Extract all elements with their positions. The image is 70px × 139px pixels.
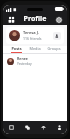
staticText: Teresa J.: [23, 30, 40, 35]
staticText: 116 friends: [23, 36, 42, 41]
button[interactable]: People: [7, 15, 16, 24]
staticText: Renee: [17, 56, 28, 61]
button[interactable]: Posts: [7, 46, 25, 53]
button[interactable]: Renee: [3, 54, 67, 68]
staticText: Profile: [16, 14, 54, 24]
staticText: Groups: [47, 46, 61, 51]
button[interactable]: Teresa J.: [6, 27, 64, 44]
staticText: Posts: [11, 46, 22, 51]
button[interactable]: Notifications: [35, 121, 51, 134]
button[interactable]: Home: [3, 121, 19, 134]
button[interactable]: Profile: [51, 121, 67, 134]
button[interactable]: Chats: [19, 121, 35, 134]
button[interactable]: Groups: [44, 46, 63, 53]
staticText: Media: [29, 46, 41, 51]
button[interactable]: Add friend: [53, 32, 61, 40]
staticText: Yesterday: [17, 62, 32, 66]
button[interactable]: Media: [25, 46, 44, 53]
button[interactable]: Settings: [54, 15, 63, 24]
